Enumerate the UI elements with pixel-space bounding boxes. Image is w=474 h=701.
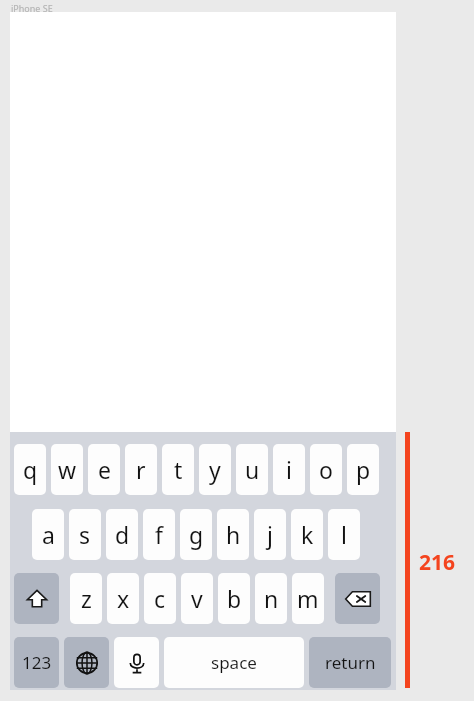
staticText: l xyxy=(341,519,347,550)
staticText: iPhone SE xyxy=(11,2,53,14)
button[interactable]: a xyxy=(32,509,64,560)
staticText: e xyxy=(98,454,111,485)
button[interactable]: r xyxy=(125,444,157,495)
staticText: d xyxy=(115,519,130,550)
button[interactable]: n xyxy=(255,573,287,624)
staticText: a xyxy=(42,519,55,550)
button[interactable]: Dictate xyxy=(114,637,159,688)
button[interactable]: o xyxy=(310,444,342,495)
button[interactable]: d xyxy=(106,509,138,560)
button[interactable]: g xyxy=(180,509,212,560)
button[interactable]: 123 xyxy=(14,637,59,688)
button[interactable]: return xyxy=(309,637,391,688)
staticText: y xyxy=(209,454,221,485)
staticText: v xyxy=(191,583,203,614)
staticText: k xyxy=(301,519,314,550)
button[interactable]: k xyxy=(291,509,323,560)
staticText: u xyxy=(245,454,260,485)
button[interactable]: q xyxy=(14,444,46,495)
button[interactable]: t xyxy=(162,444,194,495)
button[interactable]: e xyxy=(88,444,120,495)
staticText: o xyxy=(319,454,333,485)
staticText: i xyxy=(286,454,292,485)
staticText: p xyxy=(356,454,371,485)
button[interactable]: u xyxy=(236,444,268,495)
button[interactable]: Backspace xyxy=(335,573,380,624)
button[interactable]: Switch keyboard xyxy=(64,637,109,688)
staticText: n xyxy=(264,583,279,614)
staticText: w xyxy=(58,454,77,485)
staticText: t xyxy=(174,454,183,485)
staticText: r xyxy=(136,454,146,485)
staticText: space xyxy=(211,651,257,674)
button[interactable]: b xyxy=(218,573,250,624)
button[interactable]: space xyxy=(164,637,304,688)
button[interactable]: w xyxy=(51,444,83,495)
button[interactable]: i xyxy=(273,444,305,495)
staticText: g xyxy=(189,519,204,550)
button[interactable]: h xyxy=(217,509,249,560)
staticText: 123 xyxy=(22,651,52,674)
button[interactable]: v xyxy=(181,573,213,624)
staticText: 216 xyxy=(419,548,456,577)
staticText: m xyxy=(297,583,319,614)
button[interactable]: c xyxy=(144,573,176,624)
button[interactable]: x xyxy=(107,573,139,624)
staticText: h xyxy=(226,519,241,550)
staticText: j xyxy=(267,519,273,550)
button[interactable]: z xyxy=(70,573,102,624)
staticText: x xyxy=(117,583,130,614)
staticText: q xyxy=(23,454,38,485)
button[interactable]: m xyxy=(292,573,324,624)
button[interactable]: j xyxy=(254,509,286,560)
button[interactable]: y xyxy=(199,444,231,495)
button[interactable]: Shift xyxy=(14,573,59,624)
staticText: f xyxy=(155,519,163,550)
staticText: s xyxy=(79,519,91,550)
button[interactable]: f xyxy=(143,509,175,560)
staticText: b xyxy=(227,583,242,614)
staticText: return xyxy=(325,651,376,674)
button[interactable]: p xyxy=(347,444,379,495)
staticText: c xyxy=(154,583,166,614)
button[interactable]: s xyxy=(69,509,101,560)
button[interactable]: l xyxy=(328,509,360,560)
staticText: z xyxy=(81,583,92,614)
